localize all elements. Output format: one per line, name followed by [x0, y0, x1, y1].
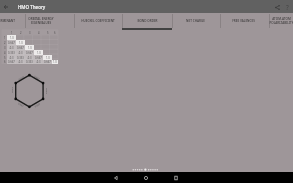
button[interactable]: DETERMINANT [0, 13, 25, 29]
staticText: 1.0 [19, 41, 23, 45]
button[interactable]: Back [0, 1, 12, 13]
staticText: 0.667 [35, 56, 42, 60]
staticText: HMO Theory [18, 4, 46, 10]
staticText: 2 [20, 31, 22, 35]
staticText: 0.667 [44, 87, 47, 94]
staticText: -0.3 [27, 56, 32, 60]
staticText: 0.333 [26, 60, 33, 64]
staticText: 0.667 [18, 74, 25, 81]
staticText: 0.667 [8, 41, 15, 45]
staticText: -0.3 [18, 51, 23, 55]
button[interactable]: Recent apps [169, 172, 182, 183]
button[interactable]: Home [139, 172, 152, 183]
staticText: 0.667 [17, 46, 24, 50]
staticText: 1.0 [28, 46, 32, 50]
staticText: 6 [54, 31, 56, 35]
button[interactable]: HUECKEL COEFFICIENT [74, 13, 122, 29]
staticText: 1.0 [53, 60, 57, 64]
button[interactable]: NET CHARGE [172, 13, 220, 29]
staticText: 0.667 [34, 74, 41, 81]
staticText: 6 [4, 60, 6, 64]
button[interactable]: Share [271, 1, 283, 13]
staticText: DETERMINANT [0, 19, 15, 23]
staticText: ? [286, 3, 289, 11]
staticText: 0.667 [26, 51, 33, 55]
staticText: -0.3 [9, 56, 14, 60]
button[interactable]: Back [109, 172, 122, 183]
staticText: 5 [4, 56, 6, 60]
staticText: 1.0 [10, 36, 14, 40]
button[interactable]: BOND ORDER [122, 13, 172, 29]
staticText: 0.333 [8, 51, 15, 55]
staticText: BOND ORDER [137, 19, 158, 23]
staticText: 3 [4, 46, 6, 50]
staticText: -0.3 [9, 46, 14, 50]
button[interactable]: ORBITAL ENERGY EIGENVALUES [25, 13, 74, 29]
staticText: 0.333 [17, 56, 24, 60]
staticText: ATOM-ATOM POLARIZABILITY [269, 17, 293, 25]
staticText: 1.0 [46, 56, 50, 60]
staticText: HUECKEL COEFFICIENT [81, 19, 115, 23]
staticText: 0.667 [18, 101, 25, 108]
staticText: NET CHARGE [186, 19, 205, 23]
staticText: 0.667 [44, 60, 51, 64]
staticText: 0.667 [8, 60, 15, 64]
staticText: 4 [4, 51, 6, 55]
staticText: 5 [47, 31, 49, 35]
staticText: -0.3 [18, 60, 23, 64]
button[interactable]: FREE VALENCES [220, 13, 269, 29]
staticText: 2 [4, 41, 6, 45]
staticText: 3 [29, 31, 31, 35]
button[interactable]: ATOM-ATOM POLARIZABILITY [269, 13, 293, 29]
staticText: -0.3 [36, 60, 41, 64]
staticText: FREE VALENCES [232, 19, 255, 23]
staticText: 1.0 [37, 51, 41, 55]
staticText: ORBITAL ENERGY EIGENVALUES [28, 17, 54, 25]
staticText: 0.667 [12, 87, 15, 94]
staticText: 0.667 [34, 101, 41, 108]
staticText: 4 [38, 31, 40, 35]
staticText: 1 [4, 36, 6, 40]
staticText: 1 [11, 31, 13, 35]
